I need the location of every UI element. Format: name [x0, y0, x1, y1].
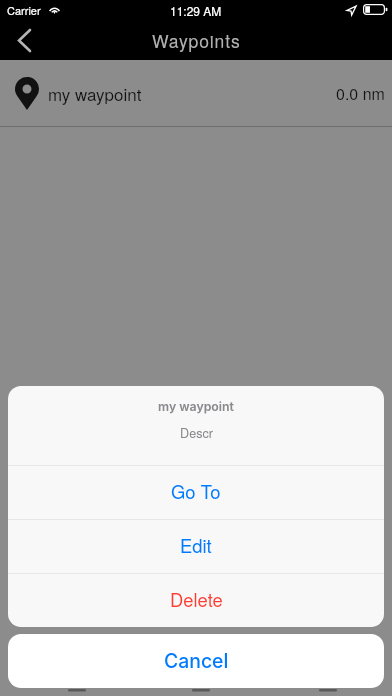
staticText: Delete	[170, 586, 223, 612]
button[interactable]: Cancel	[8, 634, 384, 688]
staticText: Waypoints	[152, 28, 241, 53]
staticText: Carrier	[7, 2, 41, 18]
staticText: Go To	[171, 478, 221, 504]
button[interactable]: Edit	[8, 520, 384, 573]
staticText: Descr	[180, 424, 213, 442]
staticText: Cancel	[164, 649, 229, 672]
button[interactable]: Delete	[8, 574, 384, 627]
staticText: my waypoint	[158, 399, 234, 414]
staticText: Edit	[180, 532, 212, 558]
staticText: 11:29 AM	[170, 2, 222, 19]
staticText: my waypoint	[48, 81, 142, 105]
staticText: 0.0 nm	[336, 82, 385, 105]
button[interactable]: Back	[0, 20, 50, 60]
button[interactable]: my waypoint	[0, 60, 392, 126]
button[interactable]: Go To	[8, 466, 384, 519]
